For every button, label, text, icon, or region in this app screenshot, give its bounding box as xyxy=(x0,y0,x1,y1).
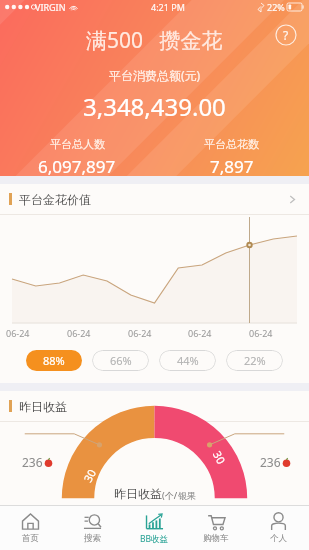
button[interactable]: 搜索 xyxy=(61,506,123,550)
button[interactable]: BB收益 xyxy=(123,506,185,550)
staticText: (个/ xyxy=(162,489,178,501)
staticText: BB收益 xyxy=(140,533,169,545)
staticText: 44% xyxy=(177,353,199,368)
staticText: 平台金花价值 xyxy=(19,192,91,207)
button[interactable]: 88% xyxy=(26,350,82,371)
staticText: 昨日收益 xyxy=(114,486,162,501)
staticText: 平台总人数 xyxy=(50,137,105,151)
button[interactable]: 昨日收益 xyxy=(0,391,309,421)
button[interactable]: 22% xyxy=(226,350,283,371)
staticText: 平台消费总额(元) xyxy=(109,67,201,83)
staticText: 个人 xyxy=(270,533,287,544)
staticText: 22% xyxy=(244,353,266,368)
staticText: 4:21 PM xyxy=(151,1,185,13)
staticText: 06-24 xyxy=(249,327,303,339)
staticText: ? xyxy=(283,27,289,43)
staticText: 搜索 xyxy=(84,533,101,544)
button[interactable]: 个人 xyxy=(247,506,309,550)
button[interactable]: 平台金花价值 xyxy=(0,184,309,214)
staticText: 06-24 xyxy=(6,327,60,339)
staticText: 首页 xyxy=(22,533,39,544)
staticText: 236 xyxy=(22,454,43,470)
staticText: 236 xyxy=(260,454,281,470)
staticText: 3,348,439.00 xyxy=(83,90,226,123)
staticText: 购物车 xyxy=(203,533,229,544)
staticText: 7,897 xyxy=(210,155,254,176)
staticText: 88% xyxy=(43,353,65,368)
button[interactable]: 44% xyxy=(159,350,216,371)
staticText: 30 xyxy=(80,466,99,485)
button[interactable]: Help xyxy=(275,24,297,46)
staticText: 银果 xyxy=(178,490,196,501)
staticText: 6,097,897 xyxy=(38,155,116,176)
staticText: 满500 攒金花 xyxy=(86,26,223,55)
staticText: 昨日收益 xyxy=(19,399,67,414)
staticText: VIRGIN xyxy=(35,1,66,13)
button[interactable]: 首页 xyxy=(0,506,61,550)
staticText: 66% xyxy=(110,353,132,368)
staticText: 22% xyxy=(267,1,285,13)
button[interactable]: 66% xyxy=(92,350,149,371)
staticText: 06-24 xyxy=(128,327,182,339)
staticText: 30 xyxy=(210,448,229,467)
staticText: 06-24 xyxy=(67,327,121,339)
button[interactable]: 购物车 xyxy=(185,506,247,550)
staticText: 平台总花数 xyxy=(204,137,259,151)
staticText: 06-24 xyxy=(188,327,242,339)
